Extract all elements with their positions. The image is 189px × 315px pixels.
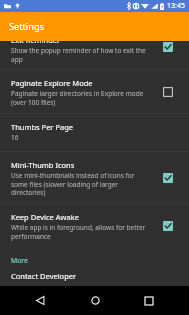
staticText: More: [11, 256, 28, 265]
staticText: 13:45: [167, 1, 185, 11]
staticText: Mini-Thumb Icons: [11, 160, 75, 170]
staticText: Contact Developer: [11, 271, 77, 281]
button[interactable]: Home: [80, 286, 110, 315]
button[interactable]: Keep Device Awake: [0, 204, 189, 248]
staticText: Use mini-thumbnails instead of icons for…: [11, 171, 147, 196]
button[interactable]: Exit Reminder: [0, 41, 189, 69]
staticText: Thumbs Per Page: [11, 122, 74, 132]
staticText: Paginate Explore Mode: [11, 78, 93, 88]
staticText: Paginate larger directories in Explore m…: [11, 89, 147, 106]
staticText: While app is in foreground, allows for b…: [11, 223, 147, 240]
button[interactable]: Recent apps: [134, 286, 164, 315]
staticText: Exit Reminder: [11, 41, 61, 45]
staticText: 16: [11, 133, 19, 142]
button[interactable]: Thumbs Per Page: [0, 114, 189, 151]
button[interactable]: Paginate Explore Mode: [0, 70, 189, 113]
button[interactable]: Contact Developer: [0, 265, 189, 286]
staticText: Show the popup reminder of how to exit t…: [11, 46, 147, 63]
staticText: Settings: [9, 20, 44, 33]
button[interactable]: Mini-Thumb Icons: [0, 152, 189, 203]
staticText: Keep Device Awake: [11, 212, 79, 222]
button[interactable]: Back: [25, 286, 55, 315]
